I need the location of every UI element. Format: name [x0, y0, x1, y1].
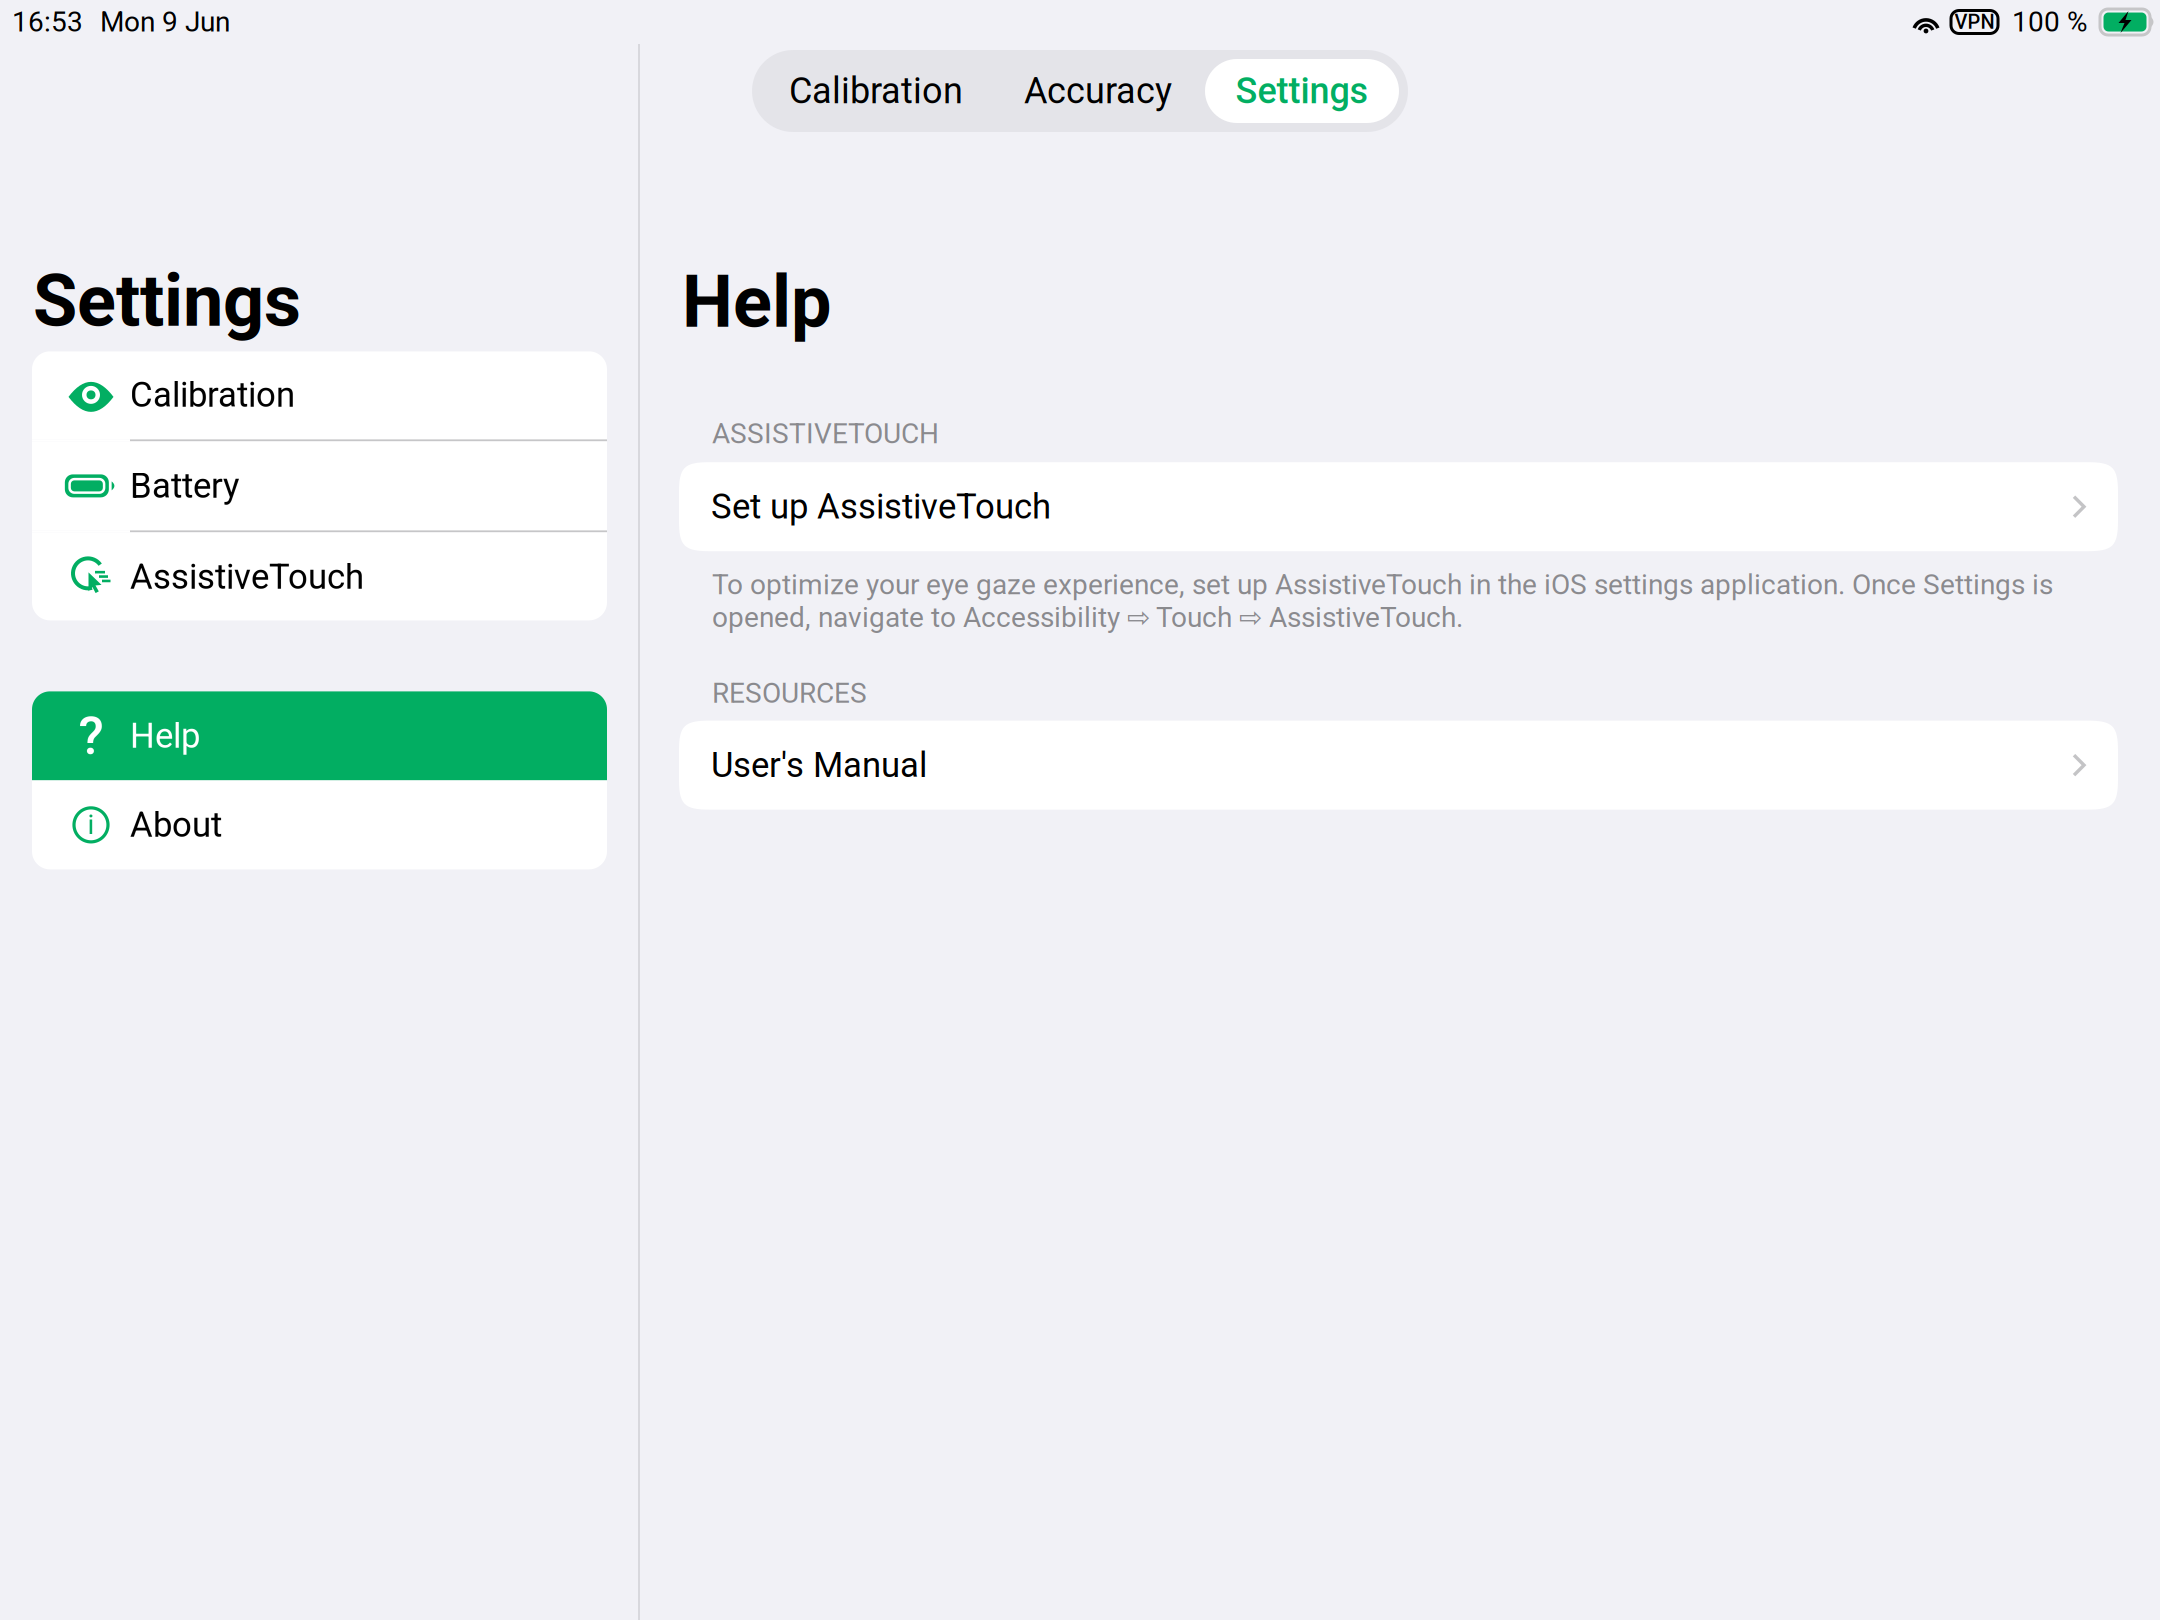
- staticText: i: [87, 808, 94, 841]
- button[interactable]: Settings: [1205, 59, 1399, 123]
- button[interactable]: Battery: [32, 441, 607, 530]
- staticText: VPN: [1954, 10, 1994, 34]
- button[interactable]: Calibration: [32, 350, 607, 439]
- button[interactable]: User's Manual: [679, 721, 2118, 810]
- staticText: Calibration: [789, 70, 963, 112]
- staticText: Settings: [1235, 70, 1368, 112]
- staticText: 100 %: [2012, 6, 2088, 38]
- button[interactable]: i: [32, 780, 607, 869]
- staticText: Calibration: [130, 375, 295, 415]
- staticText: To optimize your eye gaze experience, se…: [712, 568, 2053, 634]
- staticText: Help: [130, 716, 200, 756]
- button[interactable]: Accuracy: [991, 59, 1205, 123]
- button[interactable]: Set up AssistiveTouch: [679, 462, 2118, 551]
- staticText: Mon 9 Jun: [100, 6, 230, 38]
- staticText: About: [130, 805, 222, 845]
- button[interactable]: ?: [32, 691, 607, 780]
- staticText: Accuracy: [1024, 70, 1172, 112]
- staticText: ASSISTIVETOUCH: [712, 417, 939, 450]
- staticText: Battery: [130, 466, 239, 506]
- staticText: Help: [682, 260, 832, 344]
- button[interactable]: AssistiveTouch: [32, 532, 607, 621]
- staticText: Settings: [33, 259, 301, 343]
- staticText: User's Manual: [711, 745, 927, 785]
- button[interactable]: Calibration: [761, 59, 991, 123]
- staticText: Set up AssistiveTouch: [711, 486, 1051, 527]
- staticText: 16:53: [12, 6, 83, 38]
- staticText: RESOURCES: [712, 677, 867, 710]
- staticText: AssistiveTouch: [130, 557, 364, 597]
- staticText: ?: [78, 705, 103, 766]
